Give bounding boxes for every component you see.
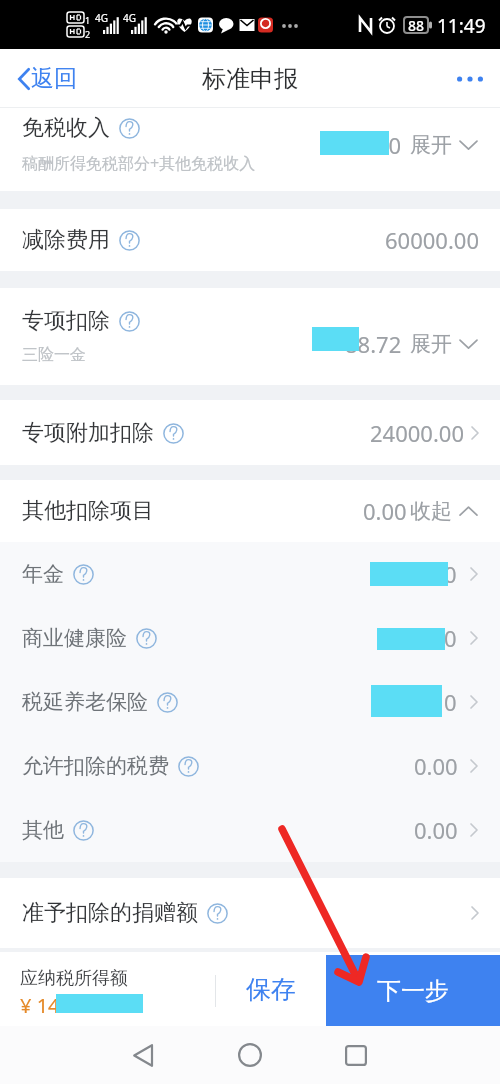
staticText: 0.00: [414, 751, 458, 781]
staticText: 标准申报: [202, 64, 298, 94]
staticText: 专项扣除: [22, 307, 110, 335]
staticText: 收起: [410, 498, 452, 524]
staticText: 00: [376, 130, 402, 160]
button[interactable]: 下一步: [326, 955, 500, 1026]
staticText: 减除费用: [22, 226, 110, 254]
staticText: 0: [444, 687, 457, 717]
button[interactable]: 年金: [0, 542, 500, 606]
button[interactable]: 税延养老保险: [0, 670, 500, 734]
staticText: 其他扣除项目: [22, 497, 154, 525]
staticText: 0.00: [363, 496, 407, 526]
staticText: 0.00: [414, 815, 458, 845]
staticText: 11:49: [437, 13, 486, 39]
staticText: 返回: [31, 64, 77, 93]
staticText: ¥ 14: [20, 992, 60, 1019]
button[interactable]: 免税收入: [0, 108, 500, 191]
button[interactable]: More options: [440, 61, 500, 97]
button[interactable]: 其他: [0, 798, 500, 862]
staticText: 专项附加扣除: [22, 419, 154, 447]
button[interactable]: 商业健康险: [0, 606, 500, 670]
button[interactable]: 保存: [216, 952, 326, 1026]
button[interactable]: 其他扣除项目: [0, 480, 500, 542]
staticText: 0: [444, 623, 457, 653]
staticText: 免税收入: [22, 114, 110, 142]
staticText: 三险一金: [22, 345, 86, 365]
button[interactable]: 专项附加扣除: [0, 400, 500, 465]
staticText: 其他: [22, 817, 64, 843]
staticText: 0: [444, 559, 457, 589]
staticText: 4G: [95, 11, 108, 25]
button[interactable]: 专项扣除: [0, 288, 500, 385]
staticText: 商业健康险: [22, 625, 127, 651]
staticText: 1: [85, 14, 91, 26]
button[interactable]: Home: [219, 1030, 281, 1080]
staticText: 24000.00: [370, 418, 464, 448]
staticText: 2: [85, 28, 91, 40]
staticText: 下一步: [377, 976, 449, 1006]
button[interactable]: Recent apps: [325, 1030, 387, 1080]
button[interactable]: 减除费用: [0, 209, 500, 271]
button[interactable]: 返回: [0, 56, 89, 101]
staticText: 展开: [410, 132, 452, 158]
staticText: 60000.00: [385, 225, 479, 255]
staticText: 保存: [246, 974, 296, 1005]
staticText: 应纳税所得额: [20, 967, 128, 990]
staticText: 4G: [123, 11, 136, 25]
staticText: 稿酬所得免税部分+其他免税收入: [22, 152, 256, 174]
staticText: 88: [408, 16, 425, 35]
button[interactable]: Back: [112, 1030, 174, 1080]
button[interactable]: 准予扣除的捐赠额: [0, 878, 500, 948]
staticText: 88.72: [345, 329, 402, 359]
button[interactable]: 允许扣除的税费: [0, 734, 500, 798]
staticText: 展开: [410, 331, 452, 357]
staticText: 准予扣除的捐赠额: [22, 899, 198, 927]
staticText: 年金: [22, 561, 64, 587]
staticText: 允许扣除的税费: [22, 753, 169, 779]
staticText: 税延养老保险: [22, 689, 148, 715]
